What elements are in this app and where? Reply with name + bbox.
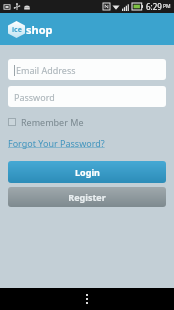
staticText: ice <box>12 25 22 35</box>
staticText: Register <box>68 191 106 203</box>
button[interactable]: Forgot Your Password? <box>8 136 105 150</box>
button[interactable]: Login <box>8 161 166 183</box>
button[interactable]: More options <box>83 291 91 307</box>
staticText: PM <box>163 3 171 10</box>
staticText: shop <box>26 22 53 37</box>
staticText: Remember Me <box>21 116 84 128</box>
button[interactable]: Remember Me <box>8 115 84 129</box>
staticText: Forgot Your Password? <box>8 137 105 149</box>
button[interactable]: iceshop home <box>8 21 53 38</box>
staticText: Password <box>14 91 55 103</box>
staticText: 6:29 <box>146 1 162 12</box>
button[interactable]: Email Address <box>8 59 166 80</box>
button[interactable]: Password <box>8 86 166 107</box>
button[interactable]: Register <box>8 187 166 207</box>
staticText: Login <box>75 166 100 178</box>
staticText: Email Address <box>16 64 76 76</box>
